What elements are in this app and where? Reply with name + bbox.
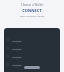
staticText: Account bbox=[12, 63, 22, 66]
staticText: Account bbox=[12, 39, 22, 42]
staticText: select account below bbox=[0, 14, 64, 17]
button[interactable]: Account bbox=[4, 36, 60, 44]
button[interactable]: Account bbox=[4, 52, 60, 60]
button[interactable]: Continue bbox=[24, 66, 40, 69]
button[interactable]: Account bbox=[4, 60, 60, 68]
button[interactable]: Account bbox=[4, 44, 60, 52]
staticText: CONNECT bbox=[0, 8, 64, 13]
staticText: Account bbox=[12, 47, 22, 50]
staticText: Choose a Wallet bbox=[0, 3, 64, 7]
staticText: Account bbox=[12, 55, 22, 58]
